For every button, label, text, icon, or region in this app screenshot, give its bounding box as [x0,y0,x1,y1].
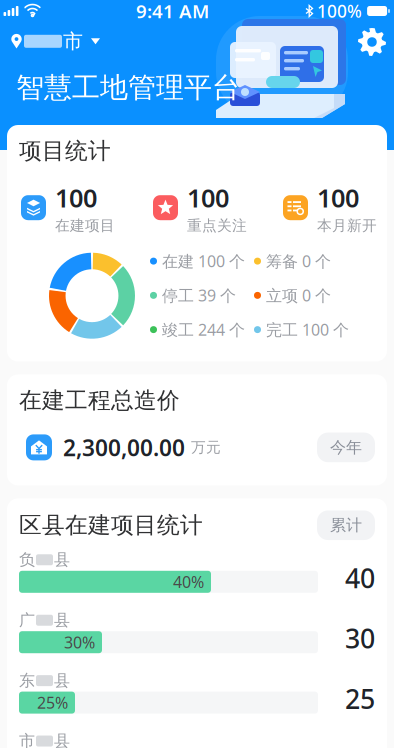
staticText: 停工 39 个 [162,285,236,306]
staticText: 县 [54,671,70,690]
staticText: 县 [54,550,70,570]
staticText: 区县在建项目统计 [19,511,203,539]
staticText: 竣工 244 个 [162,319,245,340]
button[interactable]: 市 [0,18,110,58]
staticText: 25 [345,681,375,716]
staticText: 今年 [330,438,362,457]
staticText: 县 [54,610,70,630]
staticText: 累计 [330,515,362,535]
staticText: 市 [19,731,35,748]
staticText: 40 [345,560,375,595]
staticText: 重点关注 [187,216,247,234]
button[interactable]: 累计 [317,510,375,540]
staticText: 广 [19,610,35,630]
staticText: 立项 0 个 [266,285,331,306]
staticText: 2,300,00.00 [63,432,185,462]
staticText: 项目统计 [19,137,111,165]
staticText: 100% [317,0,362,22]
button[interactable]: Settings [348,0,394,66]
staticText: 在建项目 [55,216,115,234]
staticText: 万元 [191,438,221,456]
staticText: 市 [63,29,83,54]
staticText: 在建 100 个 [162,250,245,272]
staticText: 30 [345,620,375,656]
staticText: 东 [19,671,35,690]
staticText: 40% [173,571,204,592]
button[interactable]: 今年 [317,433,375,462]
staticText: 30% [64,632,95,653]
staticText: 在建工程总造价 [19,386,180,414]
staticText: 智慧工地管理平台 [16,71,240,105]
staticText: 25% [37,692,68,713]
staticText: 负 [19,550,35,570]
staticText: 100 [55,181,97,214]
staticText: 本月新开 [317,216,377,234]
staticText: 100 [187,181,229,214]
staticText: 完工 100 个 [266,319,349,340]
staticText: 9:41 AM [136,0,209,23]
staticText: 县 [54,731,70,748]
staticText: 筹备 0 个 [266,250,331,272]
staticText: 100 [317,181,359,214]
